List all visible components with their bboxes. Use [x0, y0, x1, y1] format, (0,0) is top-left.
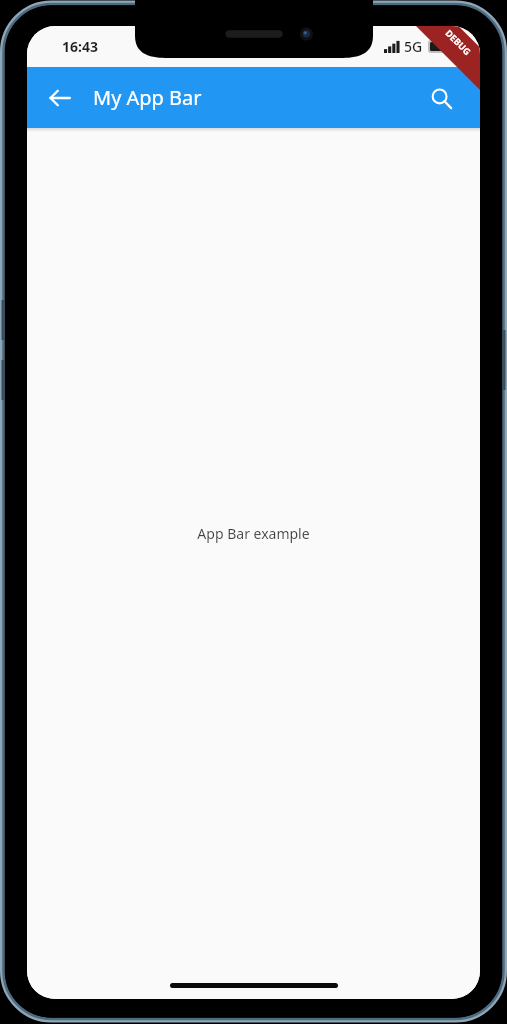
staticText: My App Bar — [93, 84, 202, 111]
staticText: App Bar example — [197, 524, 310, 543]
button[interactable]: Back — [36, 74, 84, 122]
staticText: DEBUG — [443, 27, 474, 57]
staticText: 16:43 — [62, 37, 98, 56]
button[interactable]: Search — [417, 74, 465, 122]
staticText: 5G — [404, 37, 423, 56]
